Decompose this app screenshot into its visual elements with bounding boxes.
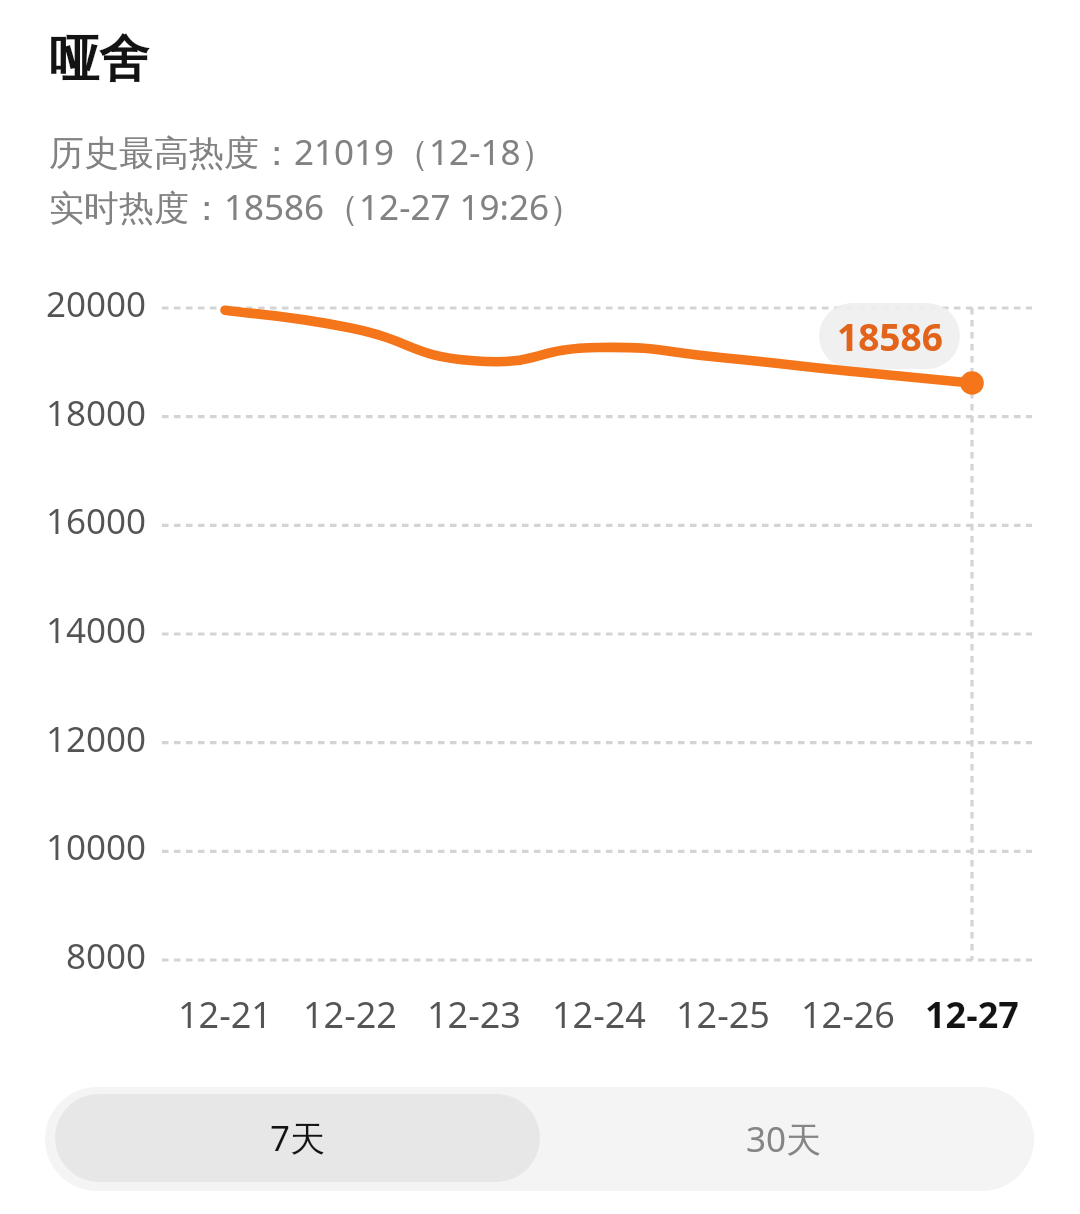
staticText: 12-25 (676, 990, 770, 1036)
staticText: 18000 (46, 389, 147, 433)
staticText: 20000 (46, 280, 147, 324)
staticText: 12-27 (925, 990, 1019, 1036)
staticText: 18586 (837, 311, 943, 361)
staticText: 14000 (46, 606, 147, 650)
staticText: 12-24 (552, 990, 646, 1036)
button[interactable]: 30天 (537, 1087, 1031, 1191)
button[interactable]: 7天 (55, 1094, 540, 1182)
staticText: 12-21 (178, 990, 272, 1036)
staticText: 哑舍 (49, 28, 149, 91)
staticText: 12-22 (303, 990, 397, 1036)
staticText: 30天 (746, 1115, 822, 1163)
staticText: 历史最高热度：21019（12-18） (49, 128, 556, 176)
staticText: 8000 (66, 932, 147, 976)
staticText: 12-26 (801, 990, 895, 1036)
staticText: 12000 (46, 715, 147, 759)
staticText: 7天 (270, 1114, 326, 1162)
staticText: 12-23 (427, 990, 521, 1036)
staticText: 16000 (46, 497, 147, 541)
staticText: 实时热度：18586（12-27 19:26） (49, 183, 585, 231)
staticText: 10000 (46, 823, 147, 867)
